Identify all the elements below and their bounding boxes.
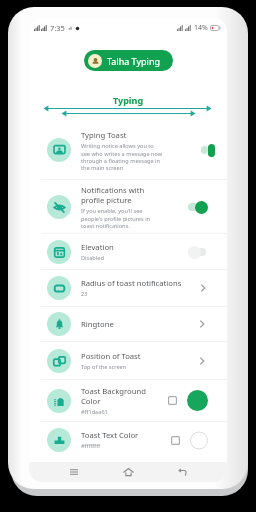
button[interactable]: Toast Text Color [29, 422, 227, 458]
staticText: Elevation [81, 242, 181, 252]
button[interactable]: Ringtone [29, 307, 227, 341]
staticText: Writing notice allows you to see who wri… [81, 142, 164, 171]
staticText: Typing Toast [81, 130, 201, 140]
button[interactable]: Color preview [190, 430, 208, 451]
button[interactable]: Toast Background Color [29, 380, 227, 421]
staticText: #ff1daa61 [81, 408, 158, 416]
button[interactable]: Open [196, 318, 208, 330]
button[interactable]: Open [197, 282, 208, 294]
button[interactable]: Open [196, 355, 208, 367]
button[interactable]: Notifications with profile picture [29, 180, 227, 233]
button[interactable]: Toggle [201, 143, 208, 157]
button[interactable]: Elevation [29, 234, 227, 269]
button[interactable]: Toggle [188, 245, 208, 259]
staticText: If you enable, you'll see people's profi… [81, 207, 163, 229]
button[interactable]: Position of Toast [29, 342, 227, 379]
staticText: Toast Background Color [81, 386, 158, 406]
button[interactable]: Select color [171, 436, 180, 445]
button[interactable]: Select color [168, 396, 177, 405]
staticText: Ringtone [81, 319, 181, 329]
button[interactable]: Color preview [187, 390, 208, 411]
button[interactable]: Talha Typing [84, 50, 173, 71]
button[interactable]: Typing Toast [29, 121, 227, 179]
staticText: 23 [81, 290, 197, 298]
staticText: #ffffffff [81, 442, 171, 450]
staticText: Radius of toast notifications [81, 278, 197, 288]
staticText: Top of the screen [81, 363, 181, 371]
button[interactable]: Toggle [188, 200, 208, 214]
staticText: Notifications with profile picture [81, 185, 159, 205]
staticText: Typing [113, 94, 144, 106]
staticText: Toast Text Color [81, 430, 171, 440]
button[interactable]: Home [119, 463, 137, 481]
staticText: Position of Toast [81, 351, 181, 361]
button[interactable]: Radius of toast notifications [29, 270, 227, 306]
button[interactable]: Recents [65, 463, 83, 481]
staticText: 14% [194, 23, 208, 33]
staticText: Talha Typing [107, 55, 160, 67]
button[interactable]: Back [173, 463, 191, 481]
staticText: 7:35 [50, 23, 65, 33]
staticText: Disabled [81, 254, 181, 262]
